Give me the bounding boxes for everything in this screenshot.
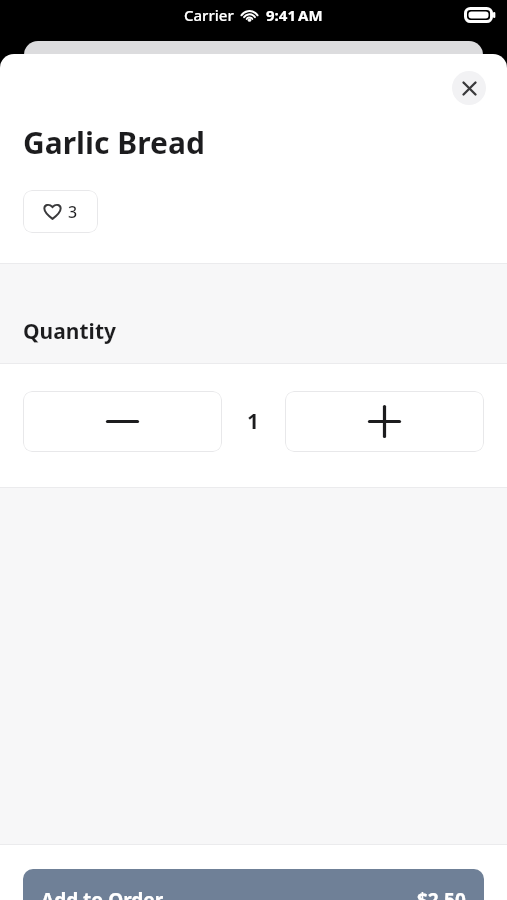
staticText: Add to Order	[41, 887, 164, 900]
staticText: $2.50	[417, 887, 466, 900]
button[interactable]: Increase quantity	[285, 391, 484, 452]
button[interactable]: Decrease quantity	[23, 391, 222, 452]
staticText: 3	[68, 201, 78, 223]
button[interactable]: Add to Order	[23, 869, 484, 900]
staticText: Garlic Bread	[23, 122, 205, 163]
button[interactable]: Close	[452, 71, 486, 105]
staticText: Carrier	[184, 5, 234, 25]
staticText: 9:41	[266, 5, 296, 25]
staticText: 1	[247, 407, 260, 436]
staticText: Quantity	[23, 317, 116, 346]
staticText: AM	[298, 5, 323, 25]
button[interactable]: 3	[23, 190, 98, 233]
